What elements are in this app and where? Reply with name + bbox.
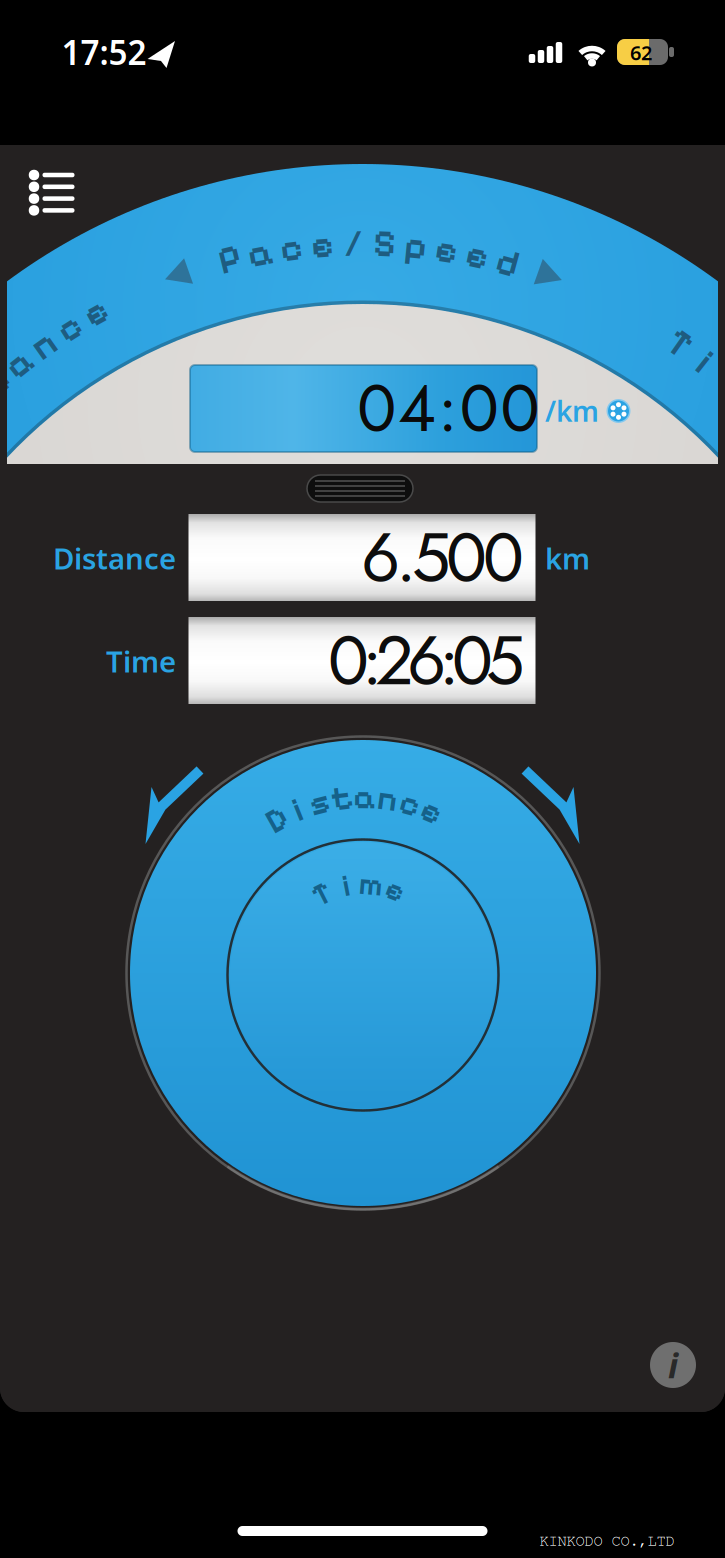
staticText: T <box>312 875 331 912</box>
button[interactable]: Pace value <box>190 365 537 452</box>
staticText: a <box>6 340 32 386</box>
staticText: c <box>280 225 303 270</box>
button[interactable]: Dial <box>126 736 599 1209</box>
staticText: e <box>311 222 334 267</box>
staticText: c <box>58 305 81 350</box>
button[interactable]: Pace unit <box>545 392 631 430</box>
staticText: d <box>496 240 519 285</box>
button[interactable]: Time value <box>188 617 535 704</box>
staticText: e <box>84 289 107 334</box>
staticText: t <box>330 778 353 819</box>
staticText: e <box>386 871 405 909</box>
staticText: 62 <box>630 39 652 66</box>
staticText: s <box>309 782 329 823</box>
staticText: D <box>267 799 287 840</box>
staticText: S <box>373 221 396 266</box>
staticText: p <box>404 223 427 268</box>
staticText: m <box>359 866 383 903</box>
staticText: 0:26:05 <box>328 611 524 710</box>
staticText: a <box>353 777 376 817</box>
staticText: i <box>293 789 301 830</box>
staticText: a <box>247 230 273 275</box>
staticText: /km <box>545 392 599 430</box>
staticText: i <box>342 867 349 904</box>
button[interactable]: Drawer handle <box>307 475 413 502</box>
staticText: i <box>700 339 709 385</box>
staticText: KINKODO CO.,LTD <box>539 1533 674 1549</box>
button[interactable]: Distance value <box>188 514 535 601</box>
button[interactable]: Menu <box>24 171 78 217</box>
staticText: Time <box>106 641 176 680</box>
staticText: c <box>400 783 420 824</box>
staticText: n <box>377 778 397 819</box>
button[interactable]: Info <box>650 1342 696 1388</box>
staticText: 04:00 <box>357 361 539 455</box>
staticText: T <box>668 321 691 366</box>
staticText: e <box>421 790 441 831</box>
staticText: i <box>668 1342 678 1388</box>
staticText: 6.500 <box>361 508 524 607</box>
staticText: km <box>545 538 590 577</box>
staticText: P <box>218 236 241 282</box>
staticText: n <box>32 322 55 367</box>
staticText: Distance <box>53 538 176 577</box>
staticText: 17:52 <box>61 30 146 74</box>
staticText: t <box>0 360 8 406</box>
staticText: e <box>466 232 489 278</box>
staticText: / <box>343 220 364 266</box>
staticText: e <box>435 227 458 272</box>
